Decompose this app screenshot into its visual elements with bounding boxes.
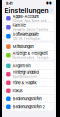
staticText: Allgemein xyxy=(13,63,31,68)
staticText: iCloud, App Store und mehr xyxy=(13,19,52,22)
staticText: Hintergrundbild xyxy=(13,70,39,75)
staticText: Apple-Account xyxy=(13,14,39,19)
staticText: Töne & Haptik xyxy=(13,80,37,85)
button[interactable]: Fokus xyxy=(4,87,54,95)
button[interactable]: Mitteilungen xyxy=(4,43,54,50)
staticText: ●● xyxy=(46,2,52,5)
button[interactable]: Familie xyxy=(4,23,54,32)
button[interactable]: Allgemein xyxy=(4,62,54,70)
staticText: Bedienungshilfen 2 xyxy=(13,104,45,109)
button[interactable]: Anzeige & Helligkeit xyxy=(4,51,54,60)
staticText: iOS 26.1 verfügbar xyxy=(13,37,41,40)
button[interactable]: Töne & Haptik xyxy=(4,79,54,87)
staticText: 9:41 xyxy=(6,1,12,6)
staticText: Einstellungen xyxy=(5,6,49,15)
staticText: Mitteilungen xyxy=(13,44,34,49)
staticText: Sperrbildschirm xyxy=(13,75,38,78)
staticText: Fokus xyxy=(13,88,23,93)
staticText: Familie xyxy=(13,23,26,28)
staticText: Bedienungshilfen xyxy=(13,96,42,101)
button[interactable]: Hintergrundbild xyxy=(4,70,54,79)
staticText: Anzeige & Helligkeit xyxy=(13,51,48,56)
staticText: Dunkelmodus, Textgröße xyxy=(13,56,52,59)
staticText: Softwareupdate xyxy=(13,32,39,37)
staticText: Verwalte deine Familie xyxy=(13,28,49,31)
button[interactable]: Bedienungshilfen xyxy=(4,95,54,103)
button[interactable]: Apple-Account xyxy=(4,14,54,23)
button[interactable]: Softwareupdate xyxy=(4,32,54,41)
button[interactable]: Bedienungshilfen 2 xyxy=(4,103,54,111)
